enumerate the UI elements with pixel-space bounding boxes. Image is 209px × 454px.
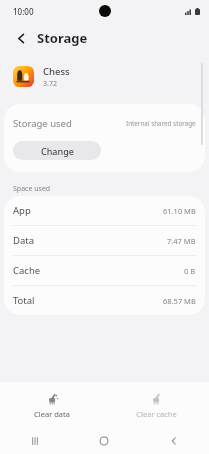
staticText: Internal shared storage (126, 119, 196, 128)
staticText: Clear cache (136, 409, 177, 419)
staticText: App (13, 204, 31, 217)
staticText: 61.10 MB (163, 206, 196, 216)
staticText: Storage used (13, 117, 72, 130)
staticText: Storage (37, 29, 88, 47)
button[interactable]: Chess (0, 54, 209, 99)
staticText: 68.57 MB (163, 296, 196, 306)
button[interactable]: App (4, 196, 205, 225)
staticText: Cache (13, 264, 41, 277)
staticText: Chess (43, 65, 70, 78)
button[interactable]: Cache (4, 256, 205, 285)
button[interactable]: Home (69, 428, 139, 454)
staticText: Change (41, 145, 74, 157)
button[interactable]: Back (10, 27, 32, 49)
button[interactable]: Data (4, 226, 205, 255)
staticText: Total (13, 294, 35, 307)
button[interactable]: Recent apps (0, 428, 69, 454)
staticText: 3.72 (43, 79, 57, 89)
staticText: Clear data (34, 409, 70, 419)
staticText: Data (13, 234, 35, 247)
staticText: Space used (13, 184, 51, 194)
staticText: 10:00 (13, 6, 34, 17)
staticText: 7.47 MB (167, 236, 196, 246)
button[interactable]: Total (4, 286, 205, 315)
button[interactable]: Clear data (0, 387, 104, 424)
button[interactable]: Back (139, 428, 209, 454)
button[interactable]: Clear cache (104, 387, 209, 424)
button[interactable]: Change (13, 141, 101, 160)
staticText: 0 B (184, 266, 196, 276)
